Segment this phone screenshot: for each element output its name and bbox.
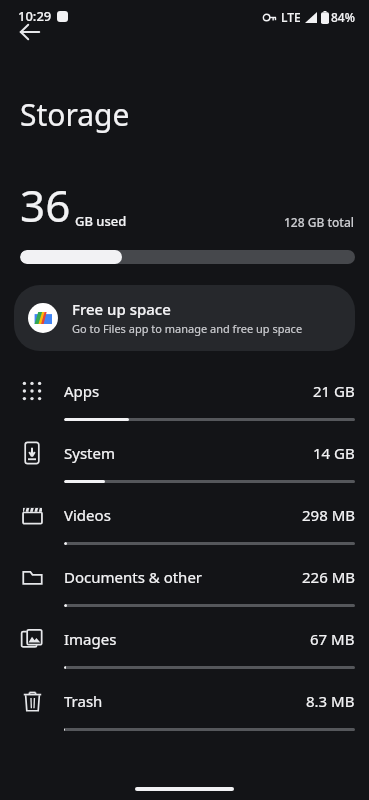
staticText: 226 MB (302, 567, 355, 587)
button[interactable]: Free up space (14, 285, 355, 351)
staticText: GB used (75, 212, 127, 230)
staticText: 298 MB (302, 505, 355, 525)
button[interactable]: Images (0, 613, 369, 675)
button[interactable]: Videos (0, 489, 369, 551)
staticText: Free up space (72, 299, 171, 319)
staticText: 21 GB (313, 381, 355, 401)
staticText: System (64, 443, 313, 463)
button[interactable]: Back (6, 8, 54, 56)
staticText: 84% (331, 9, 355, 25)
button[interactable]: Apps (0, 365, 369, 427)
staticText: Go to Files app to manage and free up sp… (72, 321, 303, 336)
staticText: 67 MB (310, 629, 355, 649)
staticText: 14 GB (313, 443, 355, 463)
staticText: 36 (20, 175, 71, 235)
staticText: Storage (20, 94, 130, 135)
staticText: Videos (64, 505, 302, 525)
staticText: LTE (281, 9, 301, 25)
staticText: Trash (64, 691, 306, 711)
staticText: Images (64, 629, 310, 649)
button[interactable]: Documents & other (0, 551, 369, 613)
button[interactable]: System (0, 427, 369, 489)
staticText: 8.3 MB (306, 691, 355, 711)
staticText: Apps (64, 381, 313, 401)
staticText: Documents & other (64, 567, 302, 587)
staticText: 10:29 (18, 7, 52, 25)
staticText: 128 GB total (284, 214, 355, 230)
button[interactable]: Trash (0, 675, 369, 737)
